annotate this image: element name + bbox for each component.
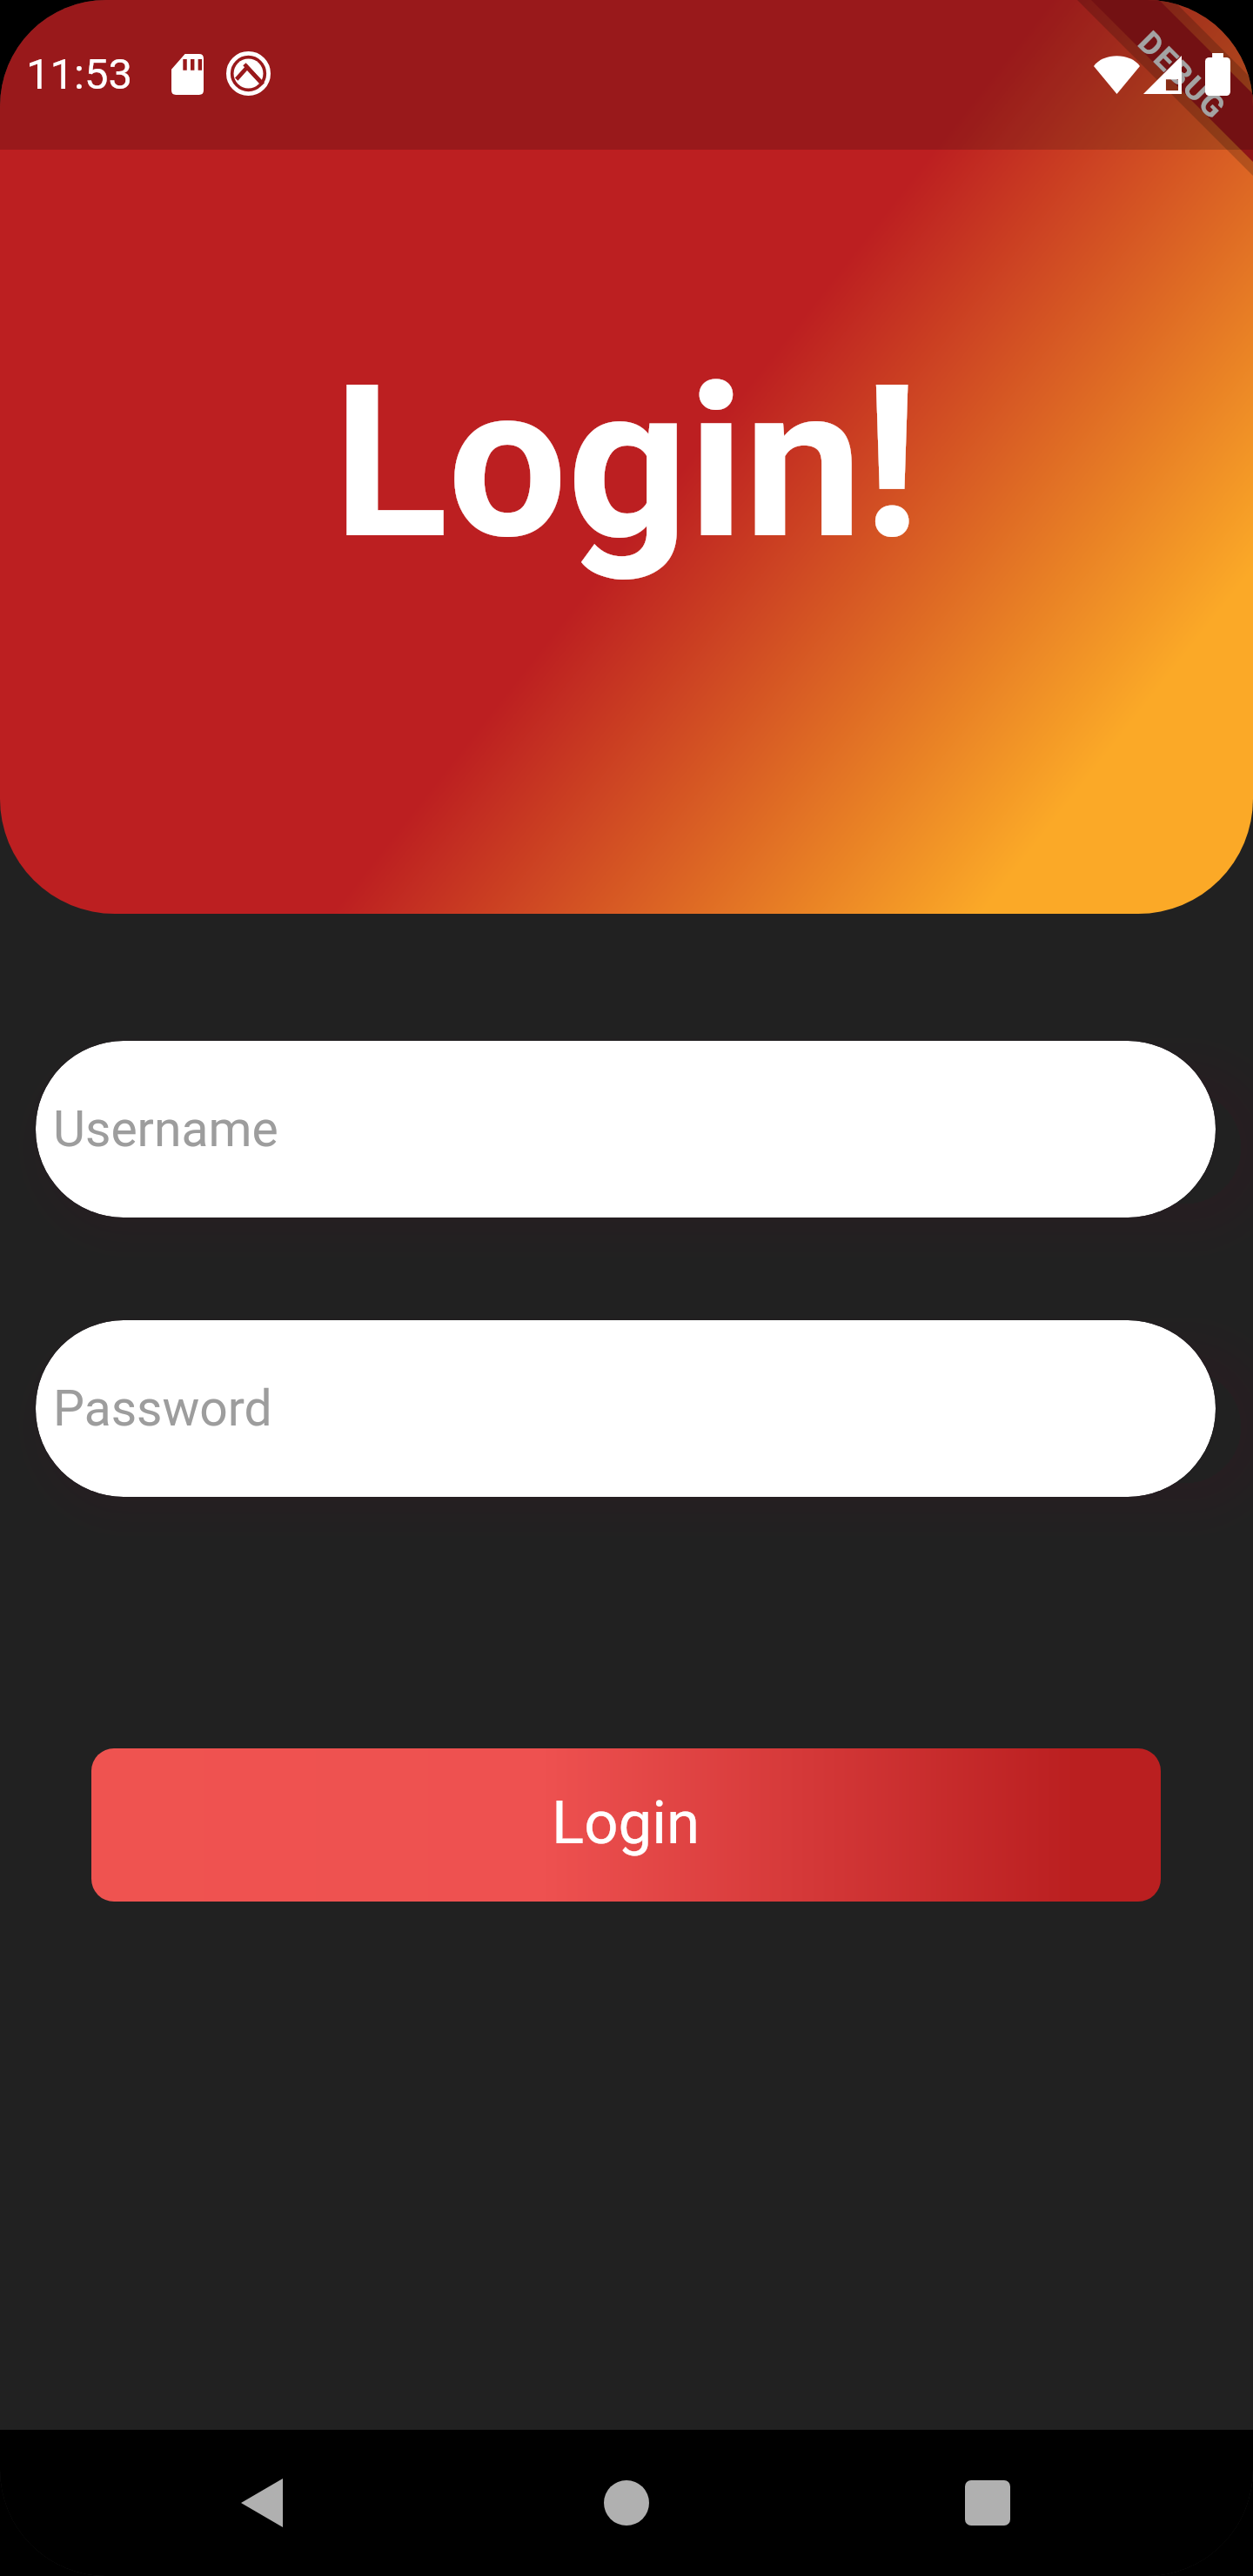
button[interactable]: Home [583, 2459, 670, 2546]
staticText: DEBUG [1131, 24, 1234, 127]
staticText: Password [53, 1379, 272, 1438]
button[interactable]: Recents [944, 2459, 1031, 2546]
staticText: Login! [333, 339, 921, 587]
button[interactable]: Login [91, 1748, 1161, 1902]
button[interactable]: Username [36, 1041, 1216, 1218]
staticText: Username [53, 1100, 278, 1158]
staticText: Login [552, 1788, 700, 1858]
button[interactable]: Back [218, 2459, 305, 2546]
button[interactable]: Password [36, 1320, 1216, 1497]
staticText: 11:53 [26, 50, 133, 99]
